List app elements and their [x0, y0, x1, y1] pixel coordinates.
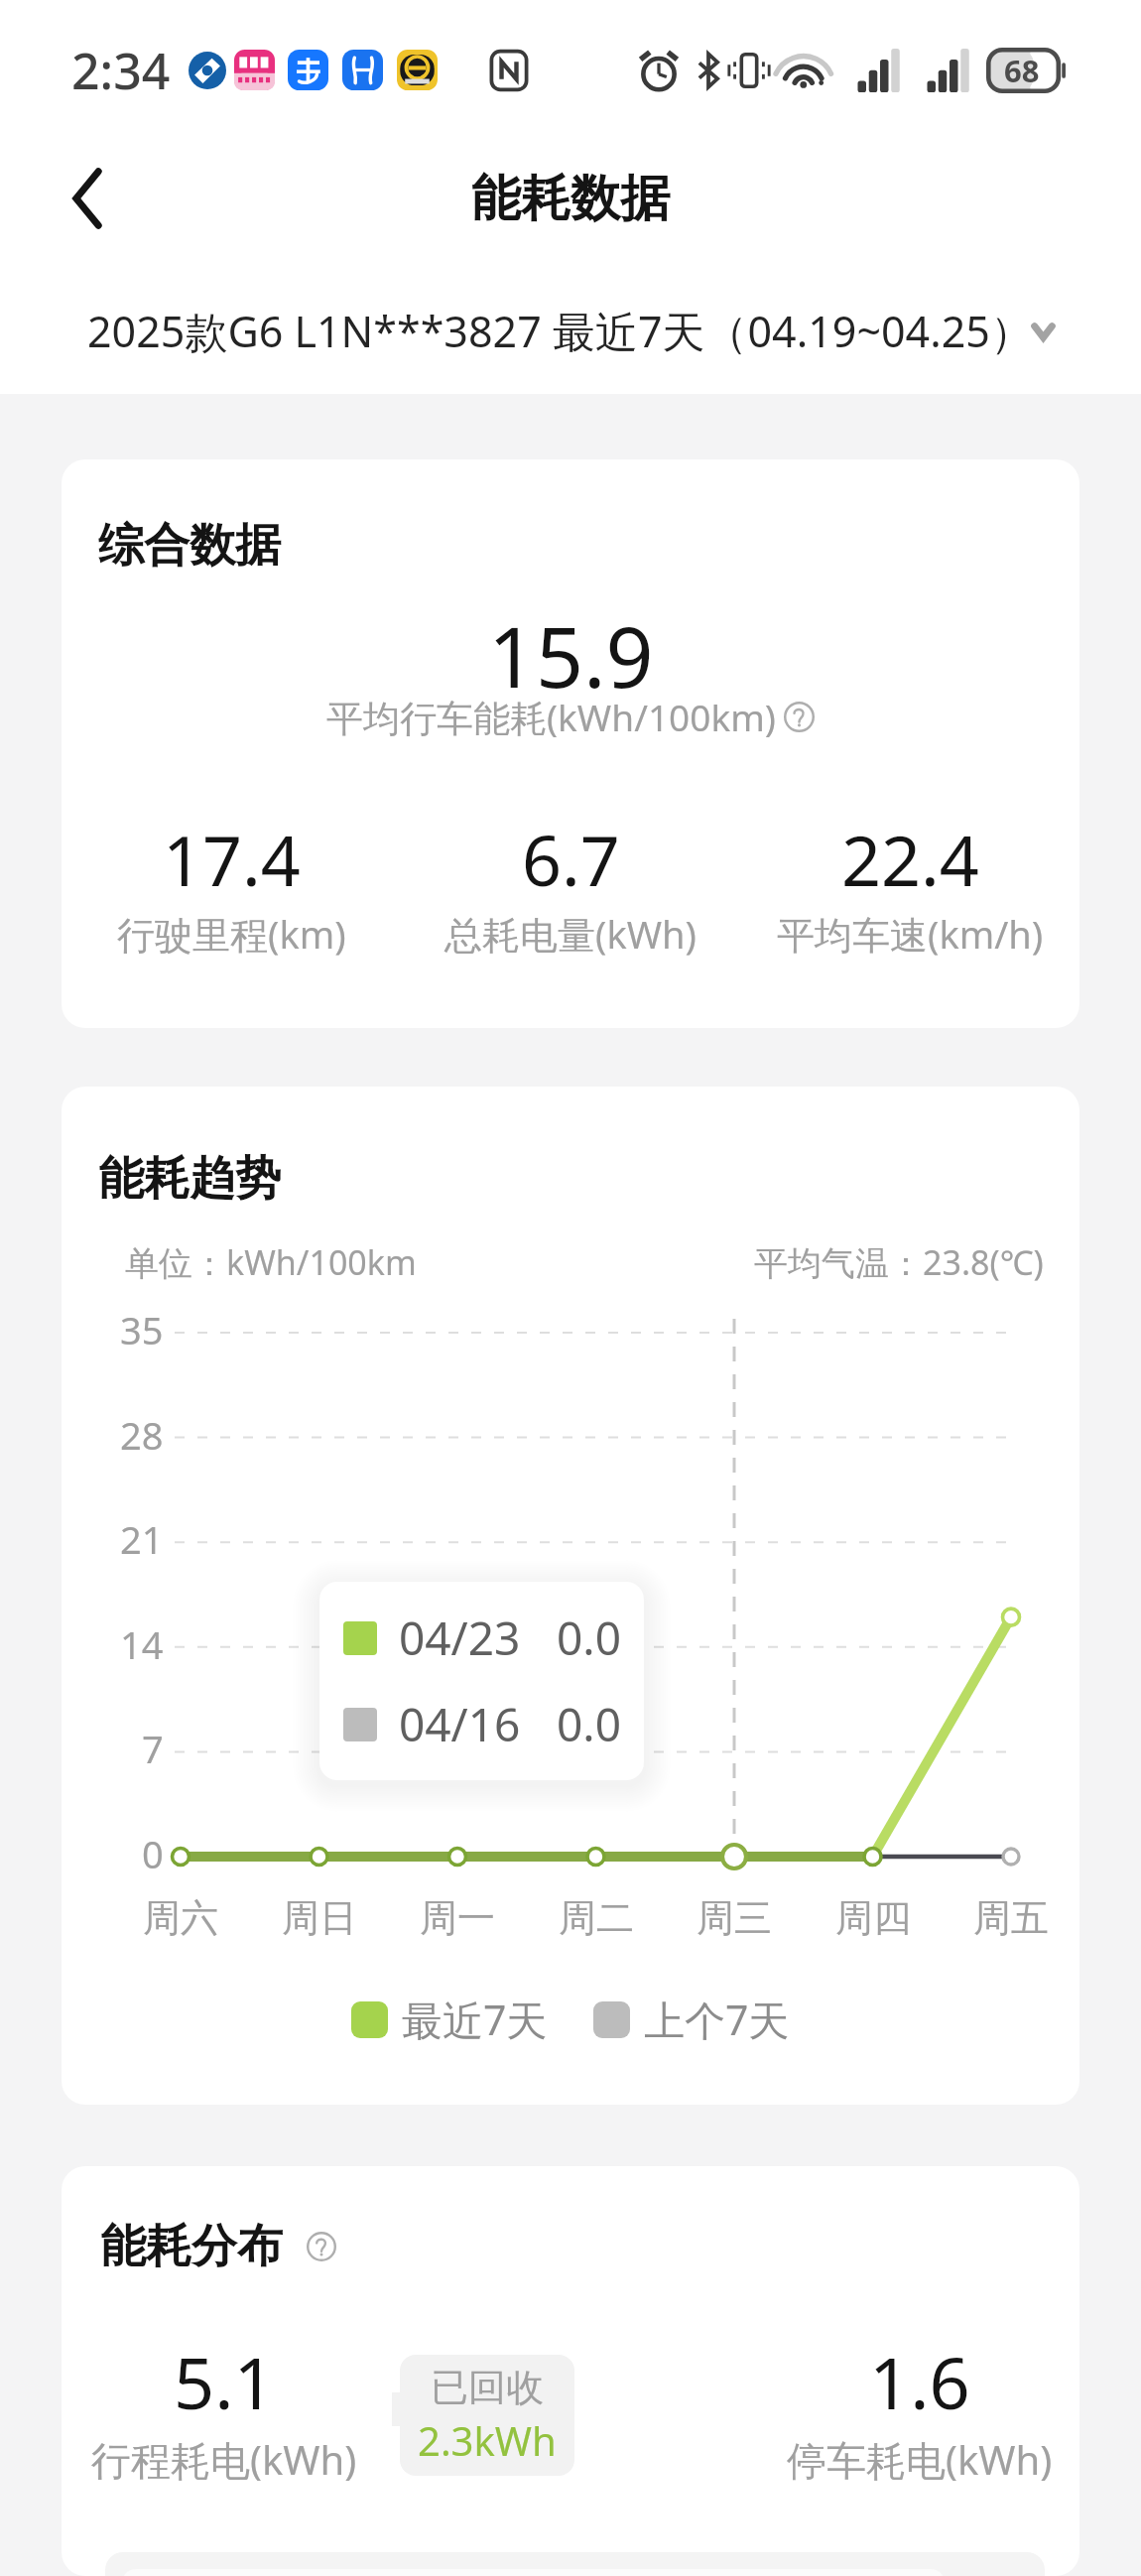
- staticText: 行程耗电(kWh): [91, 2432, 357, 2487]
- staticText: 上个7天: [644, 1992, 790, 2047]
- staticText: 综合数据: [98, 517, 281, 575]
- staticText: 7: [142, 1723, 164, 1774]
- staticText: 平均行车能耗(kWh/100km): [326, 692, 776, 742]
- staticText: 1.6: [869, 2333, 970, 2430]
- staticText: 周四: [835, 1894, 911, 1942]
- staticText: 0.0: [557, 1693, 621, 1755]
- staticText: 2.3kWh: [418, 2413, 557, 2467]
- staticText: 周三: [697, 1894, 772, 1942]
- staticText: 04/16: [399, 1693, 521, 1755]
- staticText: 21: [120, 1513, 164, 1565]
- staticText: 0.0: [557, 1607, 621, 1669]
- staticText: 2:34: [71, 37, 171, 104]
- staticText: 已回收: [431, 2364, 544, 2411]
- staticText: 周日: [282, 1894, 357, 1942]
- staticText: 68: [1004, 50, 1040, 91]
- staticText: 平均气温：23.8(℃): [754, 1239, 1044, 1285]
- button[interactable]: Back: [50, 161, 125, 236]
- staticText: 最近7天: [402, 1992, 548, 2047]
- staticText: 04/23: [399, 1607, 521, 1669]
- staticText: 周五: [973, 1894, 1049, 1942]
- button[interactable]: More information: [784, 702, 815, 732]
- staticText: 能耗趋势: [98, 1150, 281, 1208]
- staticText: 22.4: [841, 812, 979, 906]
- staticText: 周一: [420, 1894, 495, 1942]
- staticText: 35: [120, 1304, 164, 1355]
- staticText: 周六: [143, 1894, 218, 1942]
- staticText: 0: [142, 1828, 164, 1879]
- button[interactable]: 2025款G6 L1N***3827 最近7天（04.19~04.25）: [0, 268, 1141, 394]
- staticText: 17.4: [163, 812, 301, 906]
- staticText: 停车耗电(kWh): [787, 2432, 1053, 2487]
- button[interactable]: 综合数据: [62, 459, 1079, 1028]
- staticText: 平均车速(km/h): [777, 908, 1044, 960]
- staticText: 单位：kWh/100km: [125, 1239, 417, 1285]
- staticText: 28: [120, 1409, 164, 1461]
- staticText: 行驶里程(km): [117, 908, 346, 960]
- button[interactable]: 能耗分布: [62, 2166, 1079, 2576]
- staticText: 周二: [559, 1894, 634, 1942]
- button[interactable]: More information: [307, 2232, 336, 2261]
- button[interactable]: 最近7天: [351, 1992, 548, 2047]
- staticText: 15.9: [488, 598, 654, 711]
- staticText: 14: [120, 1618, 164, 1670]
- button[interactable]: 能耗趋势: [62, 1087, 1079, 2105]
- button[interactable]: 上个7天: [593, 1992, 790, 2047]
- staticText: 总耗电量(kWh): [444, 908, 697, 960]
- staticText: 能耗数据: [471, 168, 670, 230]
- staticText: 2025款G6 L1N***3827 最近7天（04.19~04.25）: [87, 302, 1033, 360]
- staticText: 6.7: [522, 812, 620, 906]
- staticText: 5.1: [174, 2333, 275, 2430]
- staticText: 能耗分布: [100, 2218, 283, 2275]
